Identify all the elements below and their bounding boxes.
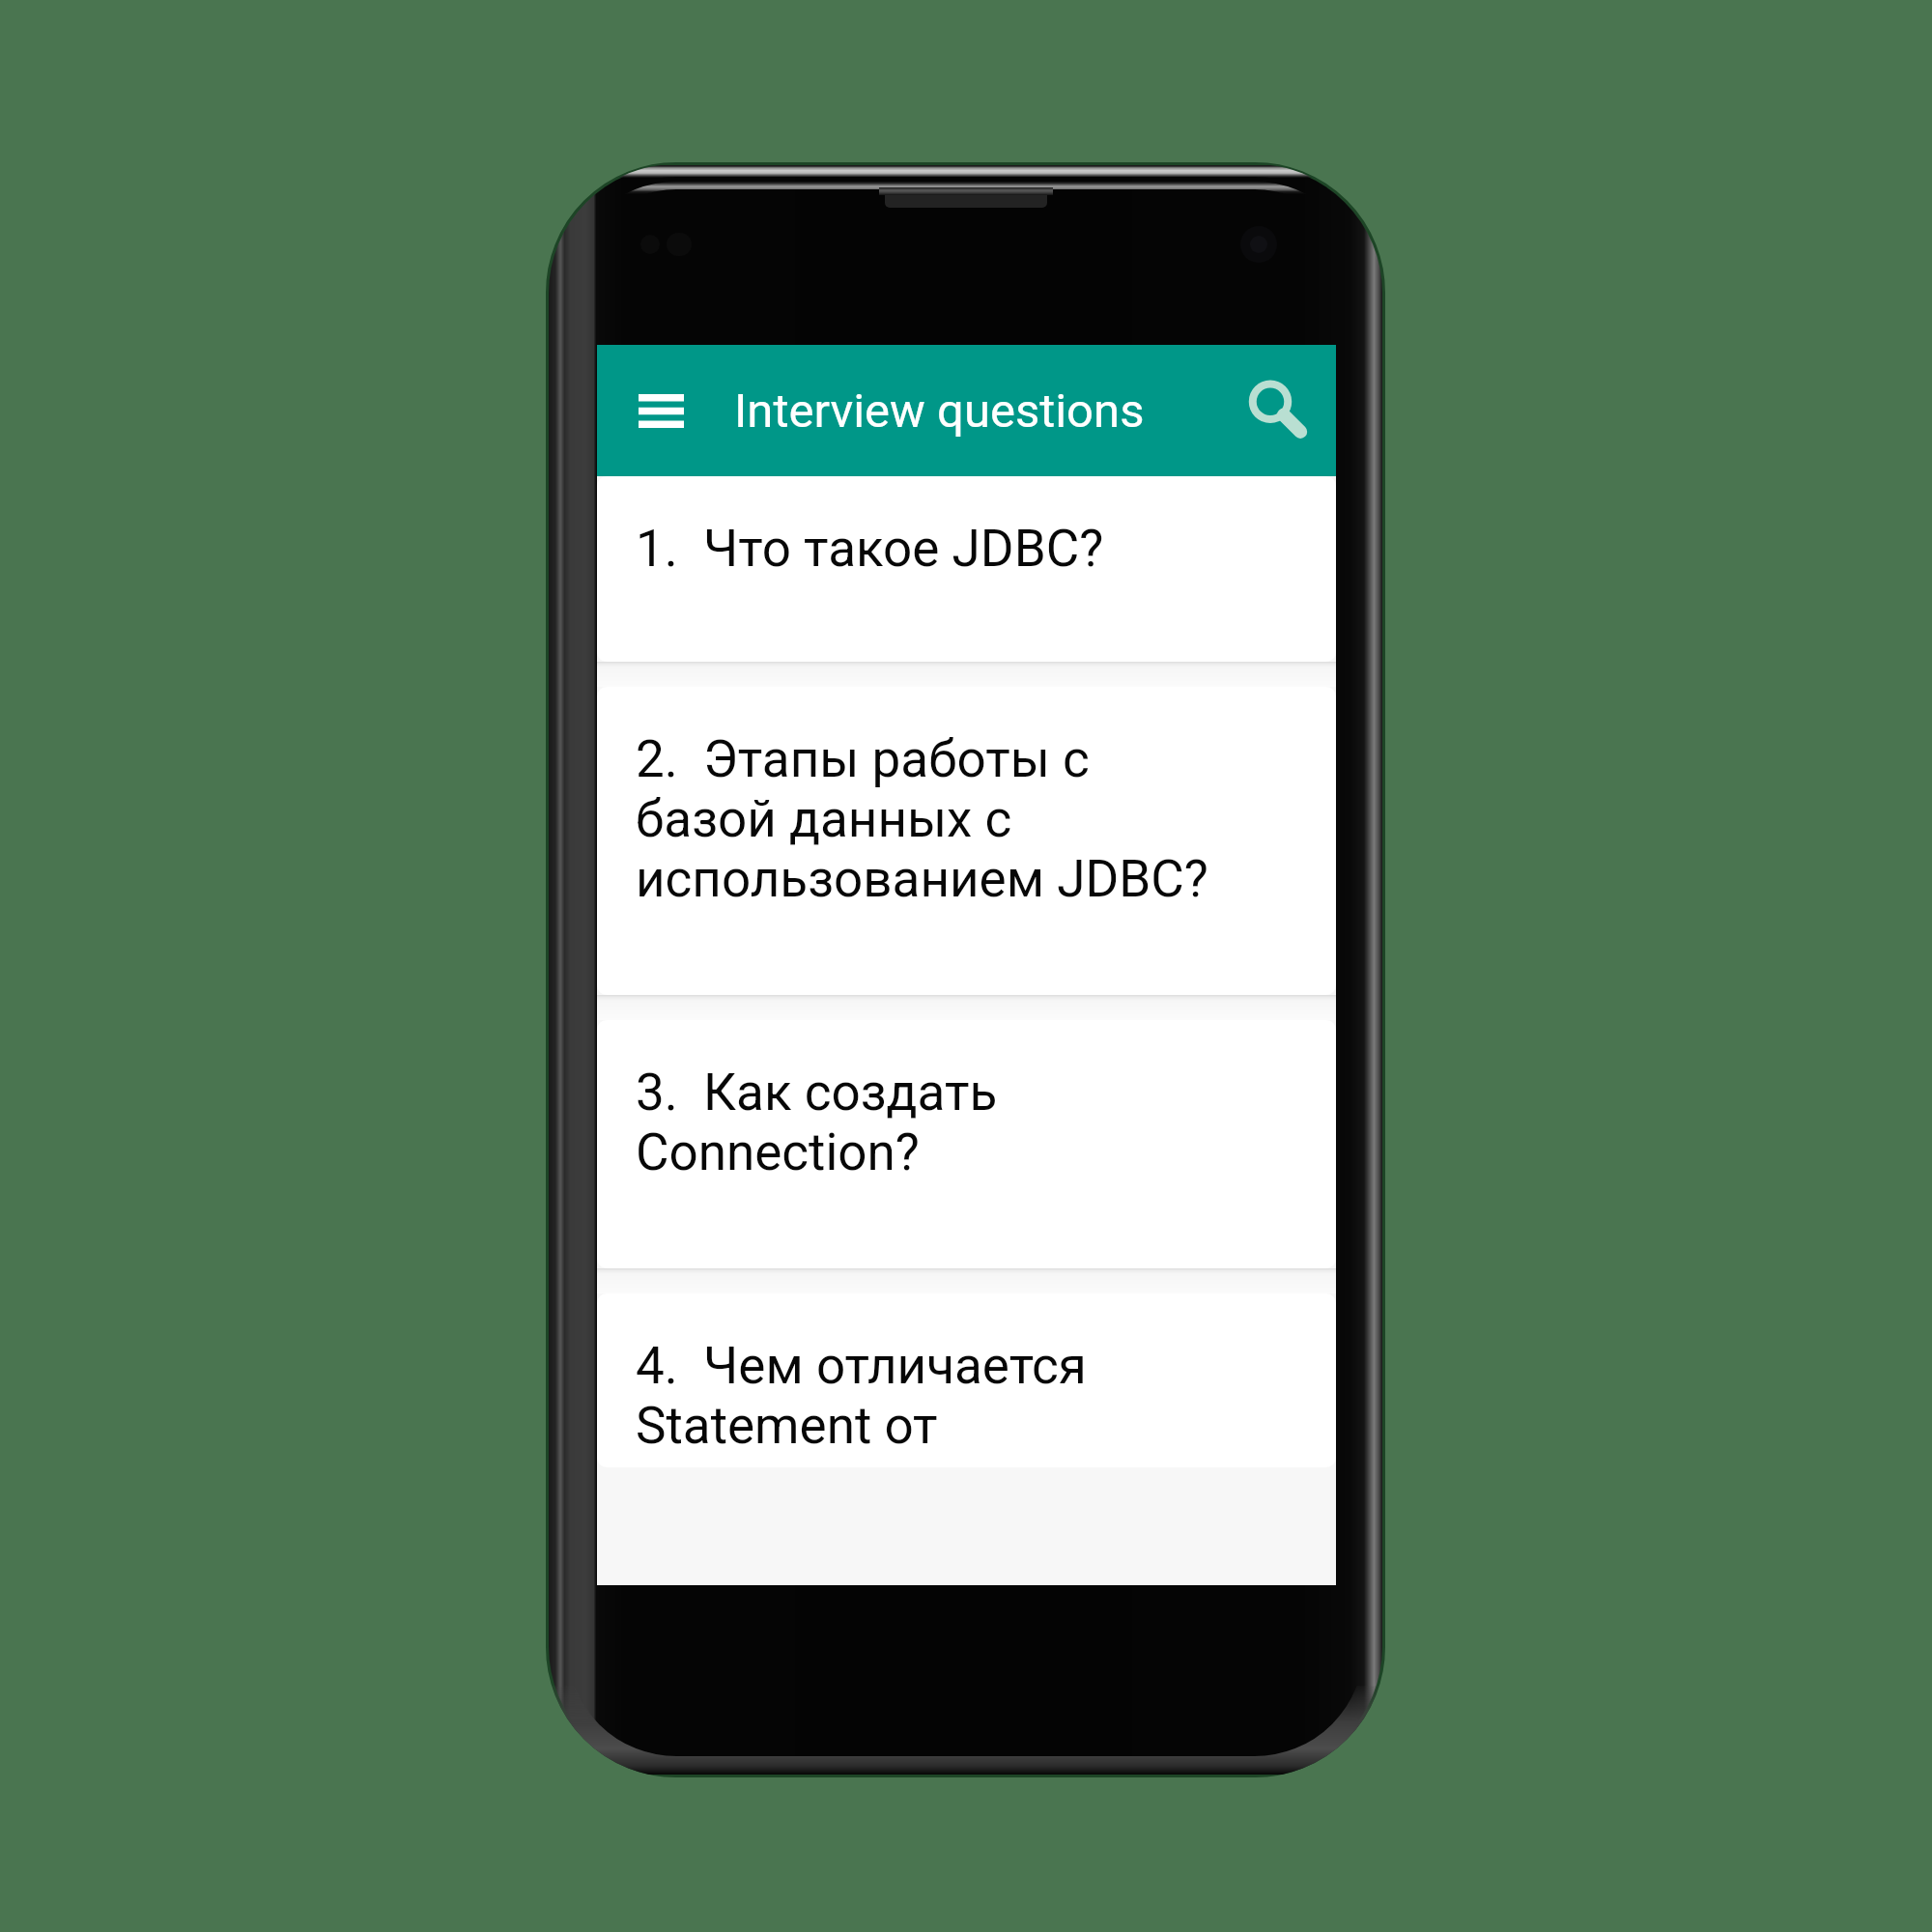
button[interactable]: 2. Этапы работы с базой данных с использ… (597, 687, 1336, 995)
staticText: Interview questions (734, 384, 1145, 439)
button[interactable]: 3. Как создать Connection? (597, 1020, 1336, 1268)
staticText: 3. Как создать Connection? (636, 1063, 998, 1182)
staticText: 1. Что такое JDBC? (636, 519, 1104, 579)
staticText: 4. Чем отличается Statement от (636, 1336, 1087, 1456)
button[interactable]: Open navigation drawer (618, 368, 703, 453)
button[interactable]: 1. Что такое JDBC? (597, 476, 1336, 662)
button[interactable]: Search (1232, 364, 1324, 457)
staticText: 2. Этапы работы с базой данных с использ… (636, 729, 1208, 909)
button[interactable]: 4. Чем отличается Statement от (597, 1293, 1336, 1467)
